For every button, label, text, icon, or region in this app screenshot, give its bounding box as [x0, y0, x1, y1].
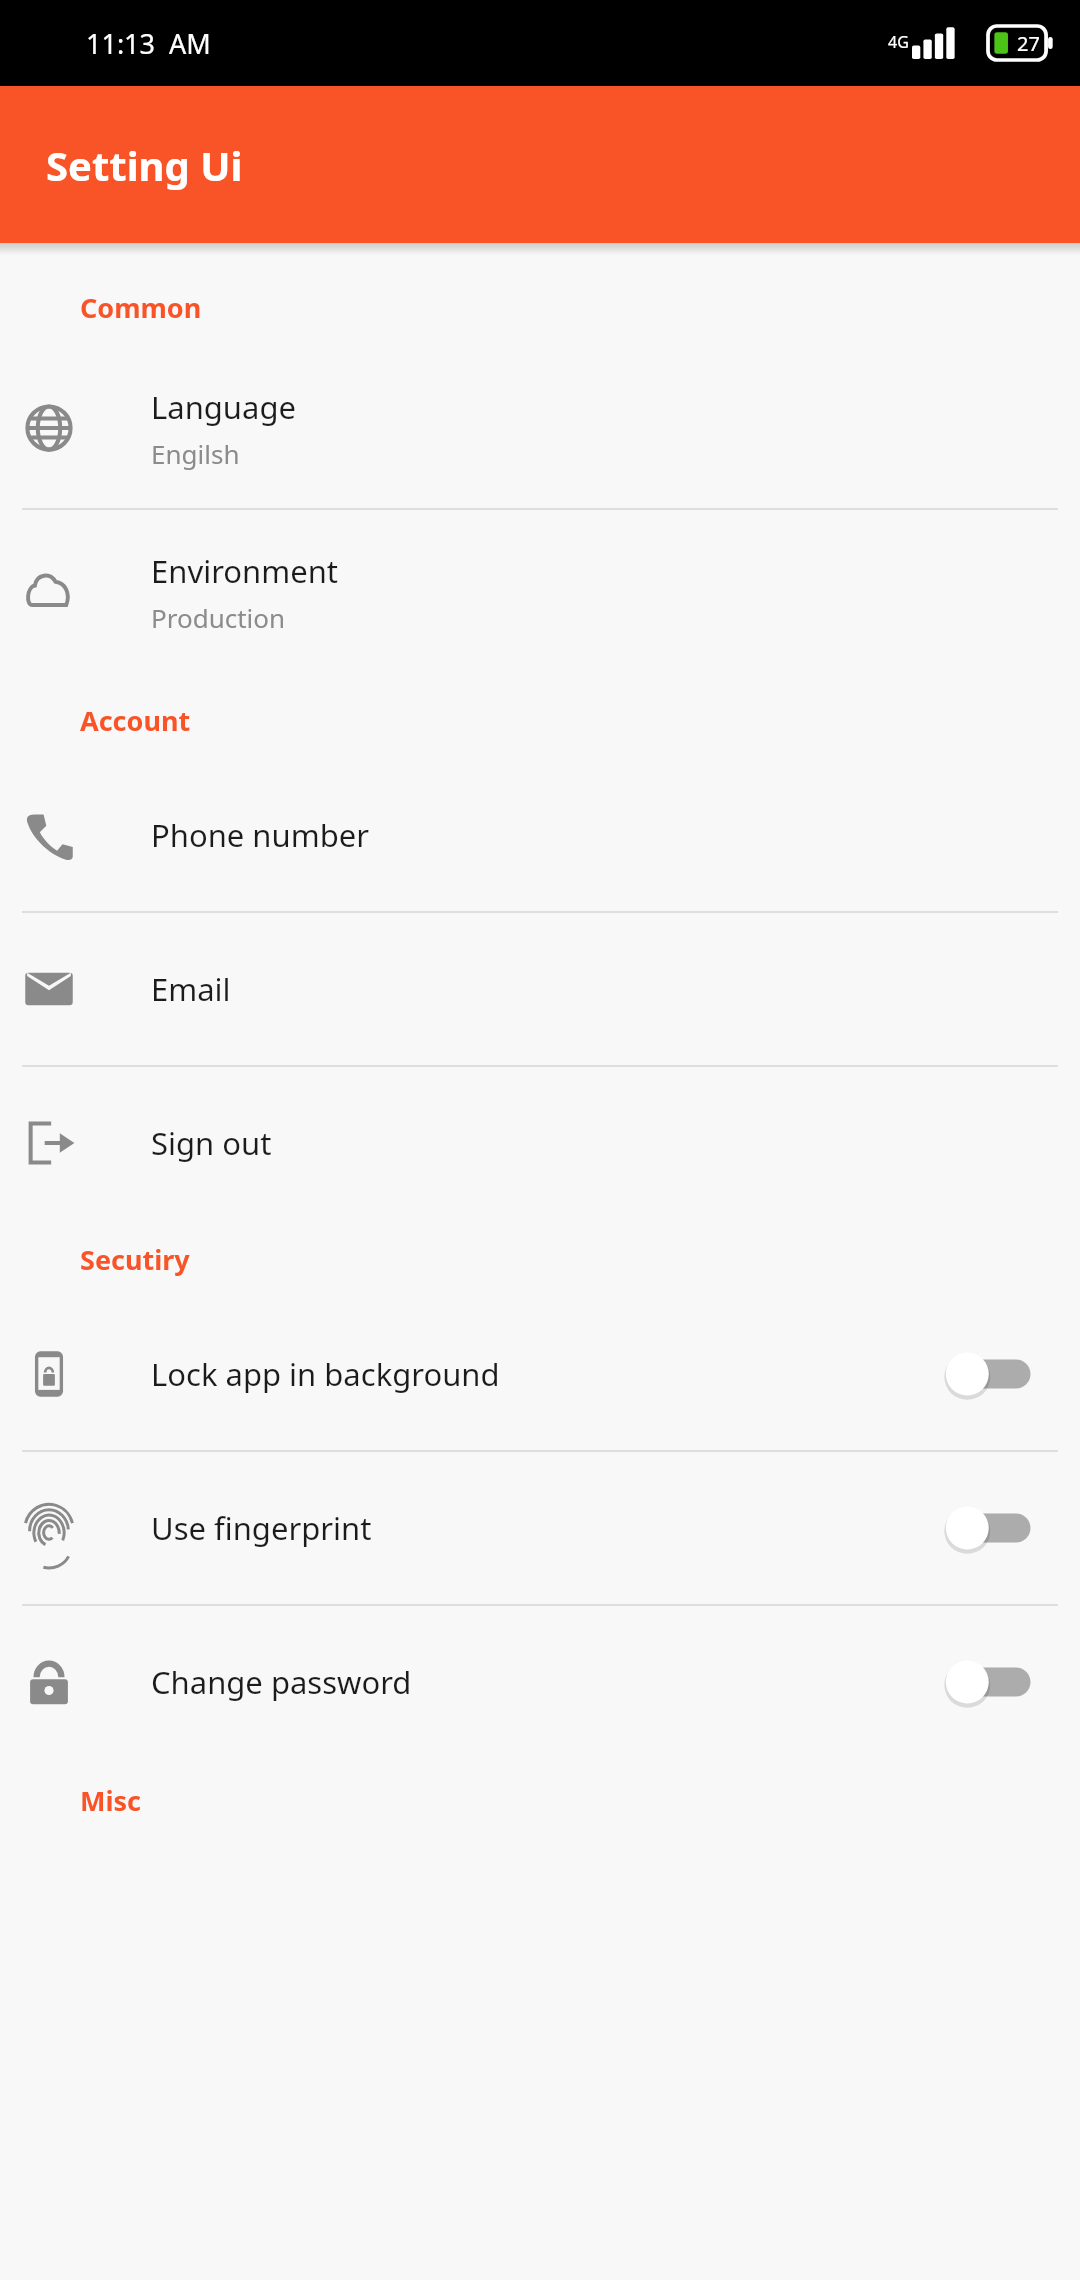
- staticText: Engilsh: [151, 436, 240, 471]
- button[interactable]: Change password switch, off: [944, 1653, 1036, 1711]
- staticText: Account: [80, 702, 191, 739]
- staticText: Sign out: [151, 1122, 272, 1164]
- staticText: Setting Ui: [46, 138, 243, 192]
- button[interactable]: Phone number: [0, 783, 1080, 887]
- button[interactable]: Language: [0, 368, 1080, 488]
- button[interactable]: Email: [0, 937, 1080, 1041]
- staticText: Language: [151, 386, 296, 428]
- button[interactable]: Sign out: [0, 1091, 1080, 1195]
- button[interactable]: Lock app in background: [0, 1322, 1080, 1426]
- other: Language: [0, 401, 98, 455]
- staticText: Common: [80, 289, 202, 326]
- other: Environment: [0, 565, 98, 619]
- staticText: Misc: [80, 1782, 142, 1819]
- staticText: Use fingerprint: [151, 1507, 372, 1549]
- button[interactable]: Use fingerprint switch, off: [944, 1499, 1036, 1557]
- button[interactable]: Use fingerprint: [0, 1476, 1080, 1580]
- staticText: Environment: [151, 550, 339, 592]
- staticText: Lock app in background: [151, 1353, 500, 1395]
- other: Sign out: [0, 1116, 98, 1170]
- staticText: 11:13 AM: [86, 25, 211, 62]
- button[interactable]: Change password: [0, 1630, 1080, 1734]
- staticText: 4G: [888, 31, 909, 53]
- other: Change password: [0, 1655, 98, 1709]
- staticText: Change password: [151, 1661, 412, 1703]
- button[interactable]: Lock app in background switch, off: [944, 1345, 1036, 1403]
- other: Use fingerprint: [0, 1501, 98, 1555]
- staticText: Phone number: [151, 814, 370, 856]
- other: Lock app in background: [0, 1347, 98, 1401]
- other: Phone number: [0, 808, 98, 862]
- staticText: Production: [151, 600, 286, 635]
- button[interactable]: Environment: [0, 532, 1080, 652]
- staticText: Email: [151, 968, 231, 1010]
- staticText: Secutiry: [80, 1241, 190, 1278]
- other: Email: [0, 962, 98, 1016]
- staticText: 27: [1017, 30, 1040, 57]
